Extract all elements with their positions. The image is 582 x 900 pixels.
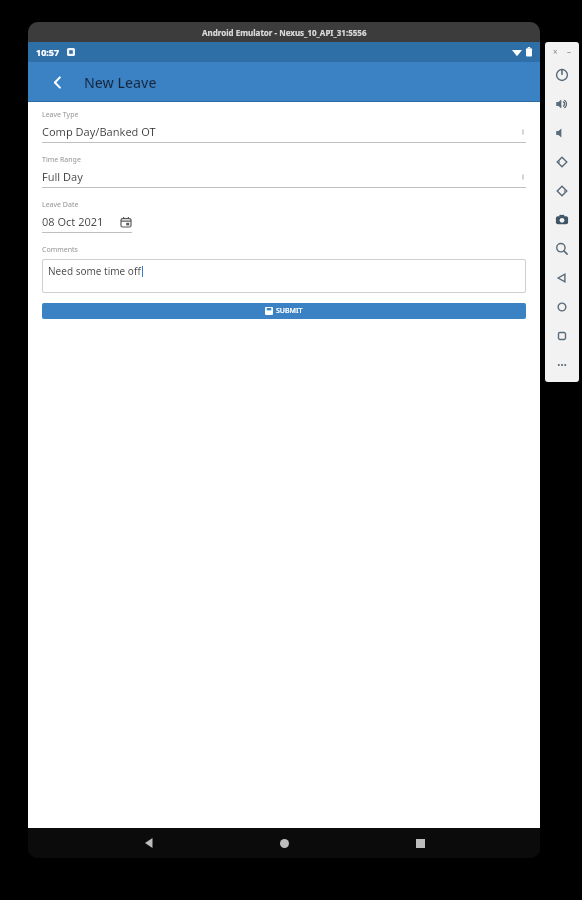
staticText: 08 Oct 2021 bbox=[42, 214, 104, 229]
button[interactable]: Screenshot bbox=[545, 205, 579, 234]
button[interactable]: 08 Oct 2021 bbox=[42, 214, 132, 229]
other: Pick date bbox=[120, 216, 132, 228]
staticText: × bbox=[553, 46, 558, 57]
button[interactable]: Rotate right bbox=[545, 176, 579, 205]
staticText: SUBMIT bbox=[276, 306, 303, 316]
button[interactable]: More bbox=[545, 350, 579, 379]
button[interactable]: Time Range bbox=[42, 155, 526, 188]
button[interactable]: SUBMIT bbox=[42, 303, 526, 319]
staticText: – bbox=[567, 46, 571, 57]
staticText: Comp Day/Banked OT bbox=[42, 124, 156, 139]
staticText: Need some time off bbox=[48, 264, 141, 278]
staticText: Leave Date bbox=[42, 200, 79, 210]
button[interactable]: Back bbox=[545, 263, 579, 292]
button[interactable]: Recent apps bbox=[405, 828, 435, 858]
button[interactable]: Back bbox=[42, 67, 72, 97]
button[interactable]: Need some time off bbox=[42, 259, 526, 293]
staticText: Comments bbox=[42, 245, 78, 255]
button[interactable]: Overview bbox=[545, 321, 579, 350]
button[interactable]: Rotate left bbox=[545, 147, 579, 176]
staticText: New Leave bbox=[84, 73, 157, 92]
button[interactable]: Volume up bbox=[545, 89, 579, 118]
staticText: Android Emulator - Nexus_10_API_31:5556 bbox=[202, 27, 367, 38]
staticText: Leave Type bbox=[42, 110, 79, 120]
button[interactable]: Power bbox=[545, 60, 579, 89]
button[interactable]: Home bbox=[269, 828, 299, 858]
button[interactable]: Leave Type bbox=[42, 110, 526, 143]
button[interactable]: Home bbox=[545, 292, 579, 321]
staticText: 10:57 bbox=[36, 46, 60, 58]
button[interactable]: Back bbox=[134, 828, 164, 858]
button[interactable]: Zoom bbox=[545, 234, 579, 263]
staticText: Full Day bbox=[42, 169, 83, 184]
staticText: Time Range bbox=[42, 155, 81, 165]
button[interactable]: Volume down bbox=[545, 118, 579, 147]
